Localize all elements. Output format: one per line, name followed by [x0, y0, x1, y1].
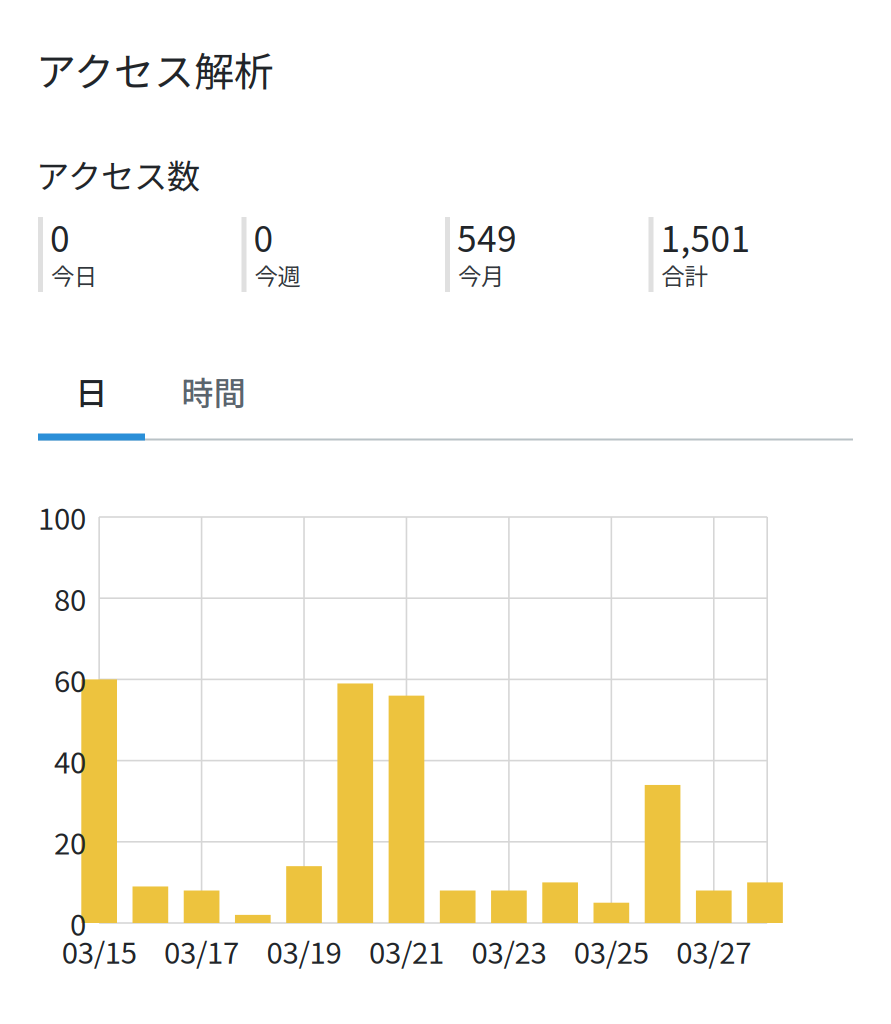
staticText: 合計 [661, 258, 707, 292]
staticText: 03/21 [369, 930, 444, 972]
staticText: 03/25 [574, 930, 649, 972]
staticText: 03/27 [676, 930, 751, 972]
staticText: 今週 [254, 258, 300, 292]
staticText: 549 [457, 211, 517, 262]
staticText: 40 [54, 739, 86, 782]
staticText: アクセス数 [36, 150, 200, 198]
staticText: 0 [50, 211, 70, 262]
staticText: アクセス解析 [36, 40, 274, 98]
staticText: 03/19 [266, 930, 341, 972]
staticText: 0 [253, 211, 273, 262]
staticText: 60 [54, 658, 86, 701]
button[interactable]: 時間 [145, 363, 282, 419]
staticText: 20 [54, 821, 86, 863]
staticText: 時間 [181, 368, 245, 414]
staticText: 03/17 [164, 930, 239, 972]
staticText: 1,501 [660, 211, 750, 262]
staticText: 03/15 [62, 930, 137, 972]
staticText: 今月 [458, 258, 504, 292]
staticText: 今日 [51, 258, 97, 292]
staticText: 0 [70, 902, 86, 944]
staticText: 03/23 [471, 930, 546, 972]
staticText: 日 [75, 368, 107, 414]
staticText: 80 [54, 577, 86, 619]
button[interactable]: 日 [38, 363, 145, 419]
staticText: 100 [38, 496, 86, 538]
